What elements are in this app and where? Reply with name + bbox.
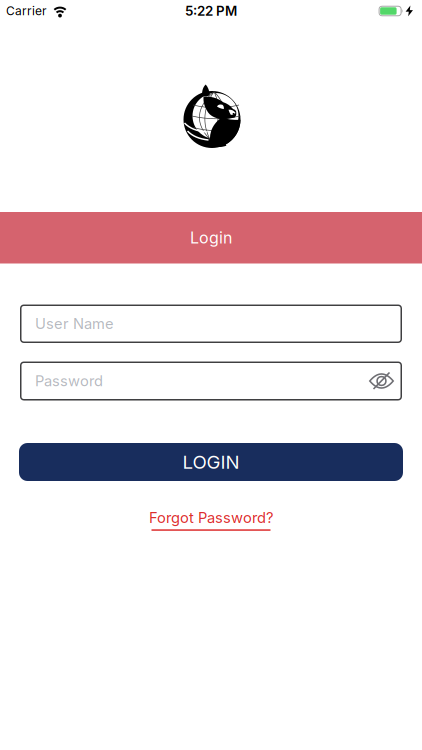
staticText: 5:22 PM bbox=[185, 3, 237, 19]
button[interactable]: LOGIN bbox=[0, 443, 422, 481]
staticText: Login bbox=[190, 228, 232, 247]
staticText: Password bbox=[35, 372, 103, 390]
staticText: Carrier bbox=[6, 4, 47, 18]
staticText: LOGIN bbox=[182, 451, 239, 473]
staticText: User Name bbox=[35, 315, 114, 332]
staticText: Forgot Password? bbox=[149, 509, 273, 526]
button[interactable]: Show password bbox=[369, 372, 402, 390]
button[interactable]: Forgot Password? bbox=[149, 509, 273, 531]
